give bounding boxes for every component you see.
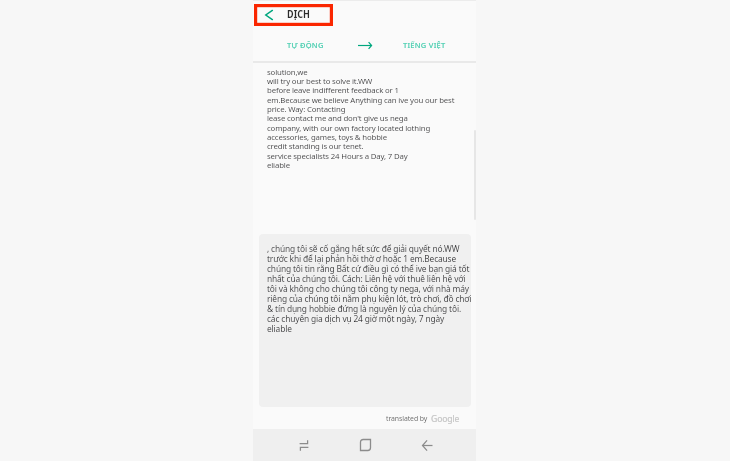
staticText: lease contact me and don't give us nega [267,113,408,124]
staticText: solution,we [267,67,308,78]
staticText: Google [431,413,460,425]
staticText: TIẾNG VIỆT [403,40,446,50]
button[interactable]: TỰ ĐỘNG [253,28,351,62]
staticText: eliable [267,323,292,334]
staticText: translated by [386,414,428,423]
staticText: price. Way: Contacting [267,104,346,115]
staticText: chúng tôi tin rằng Bất cứ điều gì có thể… [267,263,470,274]
staticText: credit standing is our tenet. [267,141,364,152]
staticText: service specialists 24 Hours a Day, 7 Da… [267,151,408,162]
staticText: before leave indifferent feedback or 1 [267,85,399,96]
staticText: will try our best to solve it.WW [267,76,373,87]
button[interactable]: Home [343,429,388,461]
staticText: accessories, games, toys & hobbie [267,132,387,143]
staticText: DỊCH [287,6,310,21]
staticText: riêng của chúng tôi nằm phụ kiện lót, tr… [267,293,472,304]
staticText: tôi và không cho chúng tôi công ty nega,… [267,283,469,294]
button[interactable]: Back [253,0,284,29]
button[interactable]: TIẾNG VIỆT [378,28,476,62]
button[interactable]: Back [402,429,452,461]
staticText: eliable [267,160,290,171]
staticText: , chúng tôi sẽ cố gắng hết sức để giải q… [267,243,460,254]
staticText: nhất của chúng tôi. Cách: Liên hệ với th… [267,273,466,284]
staticText: TỰ ĐỘNG [287,40,324,50]
staticText: trước khi để lại phản hồi thờ ơ hoặc 1 e… [267,253,457,264]
staticText: em.Because we believe Anything can ive y… [267,95,455,106]
staticText: company, with our own factory located lo… [267,123,431,134]
staticText: các chuyên gia dịch vụ 24 giờ một ngày, … [267,313,445,324]
staticText: & tín dụng hobbie đứng là nguyên lý của … [267,303,462,314]
button[interactable]: Recents [276,429,332,461]
